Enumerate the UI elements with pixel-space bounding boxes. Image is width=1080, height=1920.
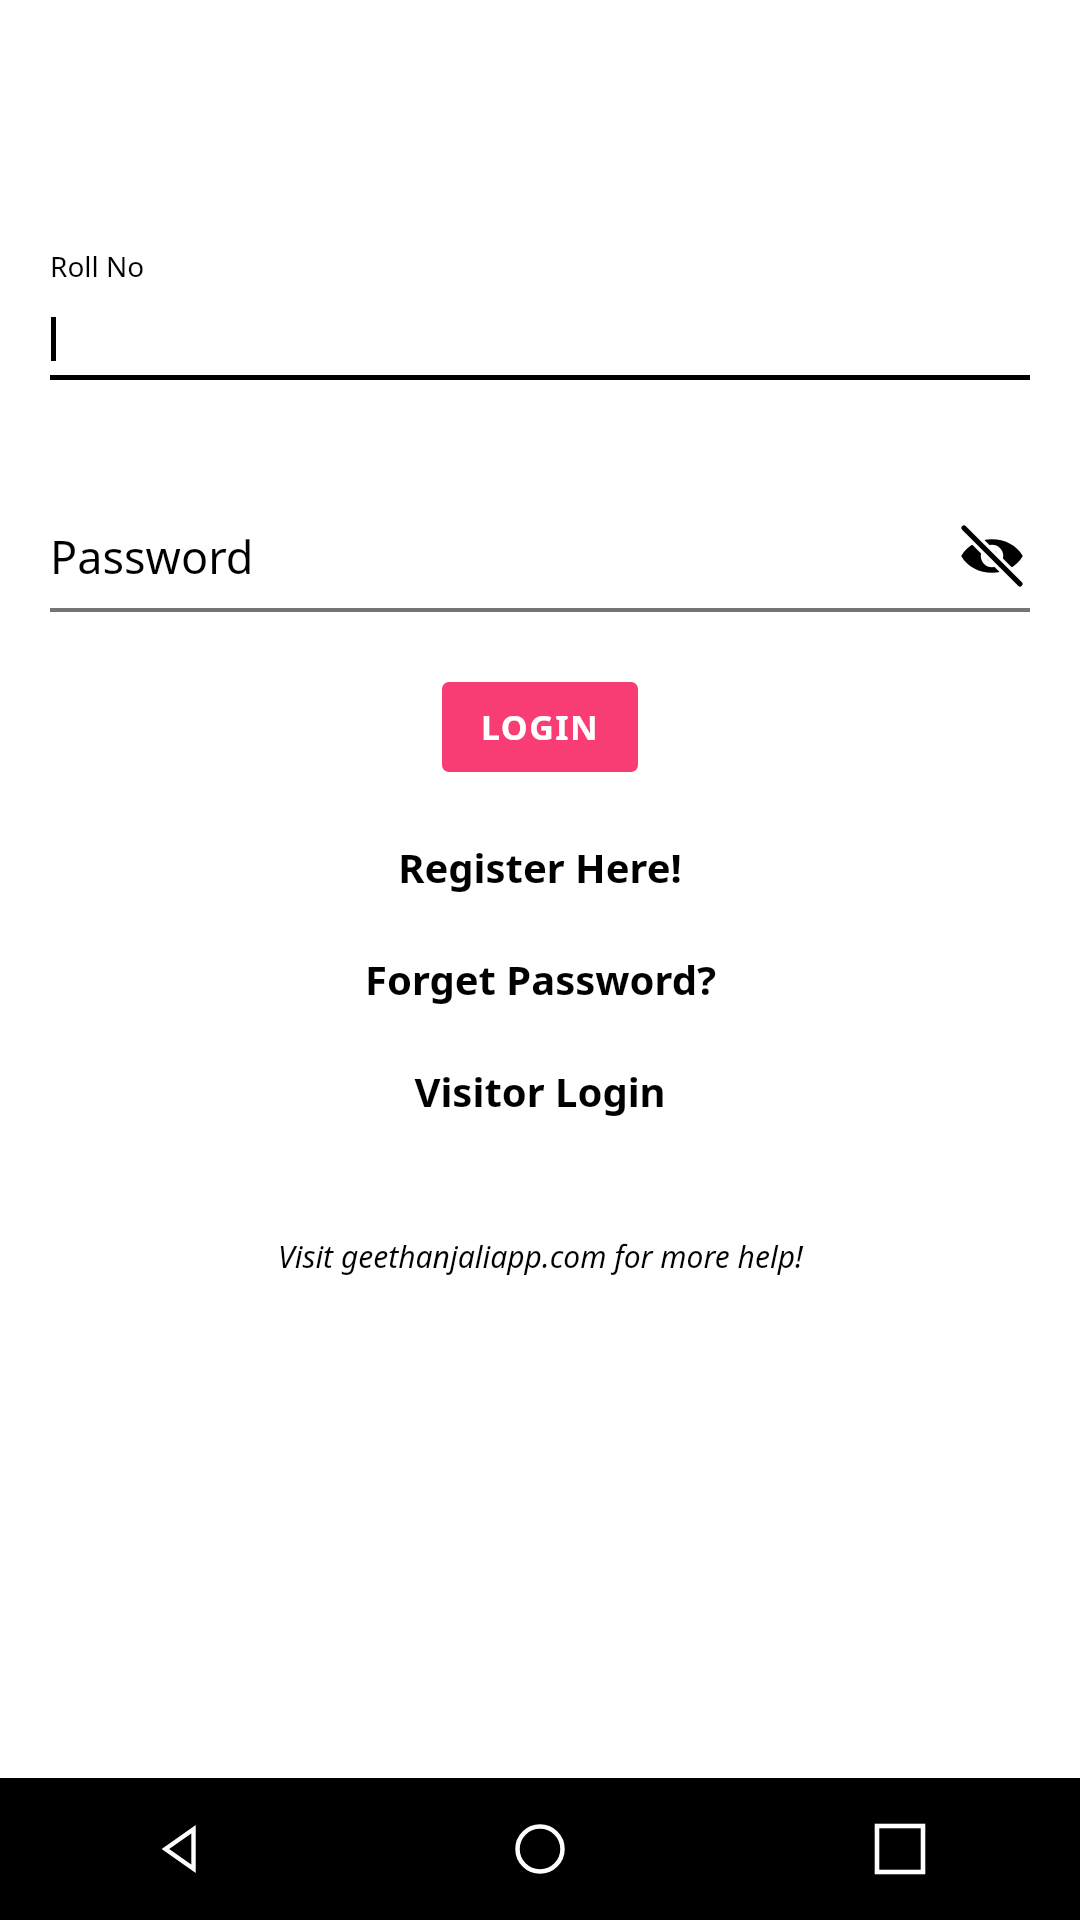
button[interactable]: Forget Password? xyxy=(50,952,1030,1006)
button[interactable]: LOGIN xyxy=(442,682,638,772)
staticText: Register Here! xyxy=(398,840,682,894)
button[interactable]: Visitor Login xyxy=(50,1064,1030,1118)
staticText: Visitor Login xyxy=(414,1064,666,1118)
staticText: Visit geethanjaliapp.com for more help! xyxy=(278,1236,803,1277)
button[interactable]: Show password xyxy=(954,518,1030,594)
button[interactable]: Register Here! xyxy=(50,840,1030,894)
staticText: Roll No xyxy=(50,247,145,285)
button[interactable] xyxy=(50,313,1030,375)
staticText: LOGIN xyxy=(481,704,600,750)
button[interactable]: Back xyxy=(0,1823,360,1875)
button[interactable]: Recent apps xyxy=(720,1826,1080,1872)
button[interactable]: Home xyxy=(360,1824,720,1874)
staticText: Forget Password? xyxy=(365,952,716,1006)
staticText: Password xyxy=(50,526,954,587)
